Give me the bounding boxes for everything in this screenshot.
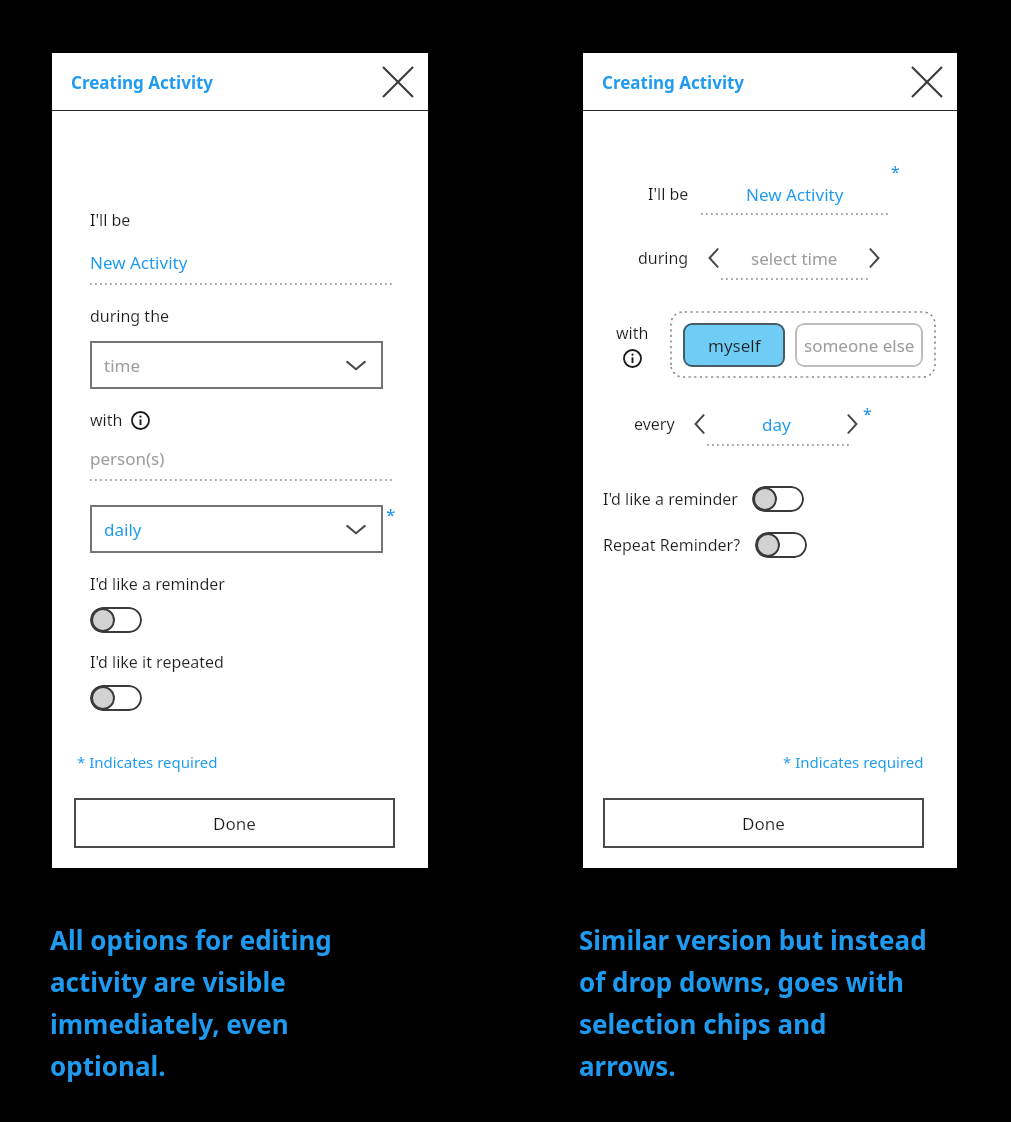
button[interactable]: Previous <box>699 243 729 273</box>
button[interactable]: Next <box>837 409 867 439</box>
staticText: myself <box>708 334 761 357</box>
staticText: I'll be <box>90 209 131 231</box>
button[interactable]: Toggle <box>755 532 807 558</box>
staticText: * Indicates required <box>77 752 218 772</box>
staticText: New Activity <box>90 251 188 274</box>
button[interactable]: Close <box>376 60 420 104</box>
staticText: selection chips and <box>579 1006 827 1041</box>
button[interactable]: Next <box>859 243 889 273</box>
staticText: person(s) <box>90 447 165 470</box>
staticText: I'd like a reminder <box>603 488 738 510</box>
button[interactable]: Previous <box>685 409 715 439</box>
button[interactable]: Done <box>74 798 395 848</box>
staticText: arrows. <box>579 1048 676 1083</box>
staticText: of drop downs, goes with <box>579 964 904 999</box>
staticText: someone else <box>804 334 915 357</box>
staticText: select time <box>751 247 838 270</box>
button[interactable]: Info <box>623 349 642 368</box>
button[interactable]: Toggle <box>752 486 804 512</box>
button[interactable]: myself <box>683 323 785 367</box>
staticText: during the <box>90 305 170 327</box>
staticText: Similar version but instead <box>579 922 927 957</box>
button[interactable]: person(s) <box>90 447 395 481</box>
staticText: time <box>104 354 141 377</box>
staticText: * Indicates required <box>783 752 924 772</box>
button[interactable]: someone else <box>795 323 923 367</box>
button[interactable]: Toggle <box>90 685 142 711</box>
staticText: every <box>634 413 675 435</box>
staticText: I'll be <box>648 183 689 205</box>
staticText: * <box>386 503 396 526</box>
staticText: with <box>616 322 649 344</box>
button[interactable]: Toggle <box>90 607 142 633</box>
staticText: All options for editing <box>50 922 332 957</box>
button[interactable]: Info <box>131 411 150 430</box>
staticText: I'd like it repeated <box>90 651 224 673</box>
staticText: daily <box>104 518 142 541</box>
staticText: with <box>90 409 123 431</box>
staticText: during <box>638 247 689 269</box>
button[interactable]: daily <box>90 505 383 553</box>
staticText: Done <box>213 812 256 835</box>
button[interactable]: time <box>90 341 383 389</box>
staticText: Repeat Reminder? <box>603 534 741 556</box>
staticText: New Activity <box>746 183 844 206</box>
staticText: Creating Activity <box>71 71 214 94</box>
button[interactable]: Done <box>603 798 924 848</box>
staticText: optional. <box>50 1048 166 1083</box>
button[interactable]: Close <box>905 60 949 104</box>
staticText: day <box>762 413 791 436</box>
button[interactable]: New Activity <box>701 177 889 211</box>
staticText: * <box>863 403 872 425</box>
staticText: Done <box>742 812 785 835</box>
staticText: activity are visible <box>50 964 286 999</box>
staticText: immediately, even <box>50 1006 289 1041</box>
staticText: Creating Activity <box>602 71 745 94</box>
staticText: I'd like a reminder <box>90 573 225 595</box>
staticText: * <box>891 161 900 183</box>
